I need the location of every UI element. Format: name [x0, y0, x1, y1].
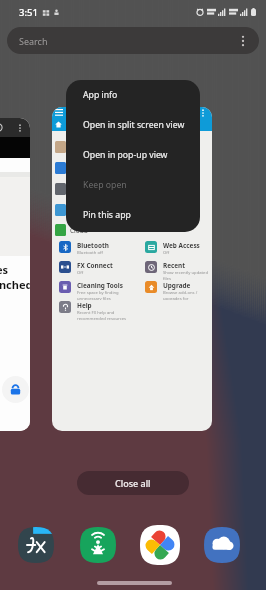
button[interactable]: Web Access — [145, 240, 211, 260]
button[interactable]: Downloads — [52, 107, 212, 431]
button[interactable]: App info — [66, 80, 200, 110]
staticText: Cloud — [70, 226, 88, 235]
staticText: Off — [163, 250, 170, 256]
staticText: Network — [70, 205, 97, 214]
button[interactable]: More options — [235, 33, 251, 49]
staticText: Show recently updated files — [163, 270, 211, 280]
button[interactable]: Open in pop-up view — [66, 140, 200, 170]
staticText: Bluetooth — [77, 241, 109, 250]
staticText: Open in pop-up view — [83, 149, 168, 161]
staticText: Pin this app — [83, 209, 131, 221]
staticText: 3:51 — [19, 6, 38, 19]
staticText: Upgrade — [163, 281, 191, 290]
button[interactable]: Cleaning Tools — [59, 280, 145, 300]
staticText: Cleaning Tools — [77, 281, 123, 290]
button[interactable]: Help — [59, 300, 145, 320]
staticText: Recent — [163, 261, 186, 270]
button[interactable]: Network — [55, 199, 212, 220]
button[interactable]: Watch5 series — [0, 118, 30, 431]
button[interactable]: Samsung Cloud — [202, 525, 242, 565]
staticText: Open in split screen view — [83, 119, 185, 131]
button[interactable]: Keep open — [66, 170, 200, 200]
staticText: Free space by finding unnecessary files — [77, 290, 119, 300]
staticText: Off — [77, 270, 84, 276]
staticText: App info — [83, 89, 118, 101]
button[interactable]: Locked app — [2, 376, 29, 403]
button[interactable]: Dropbox — [55, 157, 212, 178]
button[interactable]: System — [55, 178, 212, 199]
staticText: Web Access — [163, 241, 200, 250]
button[interactable]: Photos — [140, 525, 180, 565]
staticText: Bluetooth off — [77, 250, 103, 256]
staticText: Keep open — [83, 179, 127, 191]
button[interactable]: Downloads — [55, 136, 212, 157]
button[interactable]: Upgrade — [145, 280, 211, 300]
button[interactable]: Close all — [77, 471, 189, 495]
button[interactable]: FX File Explorer — [16, 525, 56, 565]
button[interactable]: Bluetooth — [59, 240, 145, 260]
staticText: Watch5 series — [0, 262, 9, 277]
button[interactable]: Recent — [145, 260, 211, 280]
button[interactable]: Pin this app — [66, 200, 200, 230]
staticText: FX Connect — [77, 261, 113, 270]
button[interactable]: Open in split screen view — [66, 110, 200, 140]
staticText: officially launched — [0, 277, 30, 292]
staticText: Close all — [115, 477, 151, 489]
staticText: Recent FX help and recommended resources — [77, 310, 127, 320]
staticText: Help — [77, 301, 92, 310]
staticText: Browse add-ons / upgrades for FX — [163, 290, 211, 300]
staticText: Search — [19, 35, 48, 47]
button[interactable]: FX Connect — [59, 260, 145, 280]
button[interactable]: Cloud — [55, 220, 212, 240]
button[interactable]: Radio — [78, 525, 118, 565]
staticText: System — [70, 184, 93, 193]
button[interactable]: Search — [7, 27, 259, 54]
